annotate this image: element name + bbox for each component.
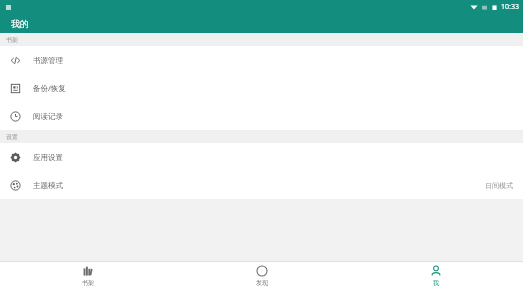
staticText: 书架 (82, 279, 94, 287)
button[interactable]: 阅读记录 (0, 102, 523, 130)
button[interactable]: 我 (349, 262, 523, 289)
staticText: 阅读记录 (33, 112, 63, 121)
button[interactable]: 书源管理 (0, 46, 523, 74)
staticText: 设置 (6, 133, 18, 141)
staticText: 应用设置 (33, 153, 63, 162)
button[interactable]: 备份/恢复 (0, 74, 523, 102)
button[interactable]: 应用设置 (0, 143, 523, 171)
staticText: 日间模式 (485, 181, 513, 190)
button[interactable]: 书架 (0, 262, 175, 289)
button[interactable]: 主题模式 (0, 171, 523, 199)
staticText: 我 (433, 279, 439, 287)
staticText: 发现 (256, 279, 268, 287)
button[interactable]: 发现 (175, 262, 349, 289)
staticText: 主题模式 (33, 181, 63, 190)
staticText: 备份/恢复 (33, 83, 66, 93)
staticText: 书源管理 (33, 56, 63, 65)
staticText: 我的 (11, 18, 29, 29)
staticText: 10:33 (501, 2, 519, 12)
staticText: 书架 (6, 36, 18, 44)
